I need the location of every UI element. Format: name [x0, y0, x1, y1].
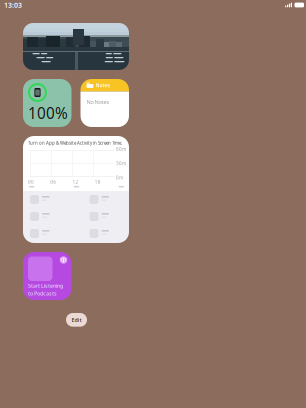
button[interactable]: Screen Time widget — [23, 136, 129, 243]
button[interactable]: Photos widget — [23, 23, 129, 70]
staticText: 0m — [116, 175, 123, 181]
staticText: Notes — [95, 82, 109, 89]
staticText: 18 — [95, 179, 101, 185]
staticText: 06 — [50, 179, 56, 185]
staticText: Start Listening — [28, 282, 63, 289]
staticText: 30m — [116, 160, 126, 167]
staticText: Turn on App & Website Activity in Screen… — [28, 140, 122, 146]
button[interactable]: Batteries, iPhone 100 percent — [23, 79, 71, 127]
staticText: 100% — [28, 103, 68, 123]
staticText: Edit — [71, 316, 81, 323]
staticText: 12 — [72, 179, 78, 185]
staticText: 13:03 — [4, 0, 22, 10]
button[interactable]: Notes, No Notes — [80, 79, 129, 127]
staticText: 60m — [116, 146, 126, 152]
staticText: to Podcasts — [28, 290, 57, 297]
staticText: 00 — [28, 179, 34, 185]
button[interactable]: Podcasts, Start Listening to Podcasts — [23, 252, 71, 300]
button[interactable]: Edit — [66, 313, 87, 327]
staticText: No Notes — [86, 98, 109, 106]
